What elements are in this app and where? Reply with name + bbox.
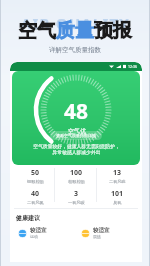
staticText: 较适宜 xyxy=(93,227,110,234)
staticText: 预报 xyxy=(94,19,132,43)
staticText: 细颗粒物 xyxy=(27,179,44,184)
other: Morning exercise advice xyxy=(81,229,90,238)
button[interactable]: Exercise advice xyxy=(16,227,79,239)
button[interactable]: 查看空气质量指数详情 xyxy=(50,131,102,140)
button[interactable]: 50 xyxy=(14,168,56,184)
staticText: 臭氧 xyxy=(113,200,122,205)
staticText: 质量 xyxy=(56,19,94,43)
staticText: 100 xyxy=(70,168,83,178)
staticText: 一氧化碳 xyxy=(68,200,85,205)
staticText: 空气优 xyxy=(68,127,86,135)
button[interactable]: 100 xyxy=(56,168,97,184)
staticText: 粗颗粒物 xyxy=(68,179,85,184)
staticText: 13 xyxy=(113,168,122,178)
staticText: 查看空气质量指数详情 xyxy=(56,133,96,138)
staticText: 101 xyxy=(111,189,124,199)
staticText: 健康建议 xyxy=(16,214,40,222)
staticText: 空气 xyxy=(18,19,56,43)
staticText: 50 xyxy=(31,168,40,178)
other: Exercise advice xyxy=(18,229,27,238)
button[interactable]: 101 xyxy=(97,189,138,205)
staticText: 12:36 xyxy=(128,64,137,69)
button[interactable]: 3 xyxy=(56,189,97,205)
staticText: AIR QUALITY xyxy=(21,13,130,33)
staticText: 晨练 xyxy=(93,234,101,239)
staticText: 二氧化硫 xyxy=(109,179,126,184)
staticText: 详解空气质量指数 xyxy=(49,46,101,54)
staticText: 3 xyxy=(74,189,79,199)
staticText: 40 xyxy=(31,189,40,199)
staticText: 较适宜 xyxy=(30,227,47,234)
staticText: 48 xyxy=(64,97,89,126)
button[interactable]: Morning exercise advice xyxy=(79,227,142,239)
button[interactable]: 40 xyxy=(14,189,56,205)
staticText: 运动 xyxy=(30,234,38,239)
staticText: 二氧化氮 xyxy=(27,200,44,205)
staticText: 空气质量较好，健康人群无需刻意防护， 异常敏感人群减少外出 xyxy=(33,143,120,156)
button[interactable]: 13 xyxy=(97,168,138,184)
